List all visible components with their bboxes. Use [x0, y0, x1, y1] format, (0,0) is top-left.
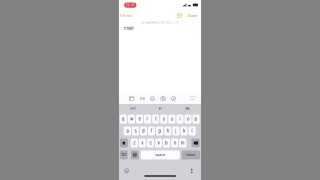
staticText: f — [151, 128, 153, 133]
staticText: r — [147, 117, 149, 122]
staticText: h — [167, 128, 169, 133]
button[interactable]: w — [128, 115, 135, 124]
button[interactable]: Emoji keyboard — [124, 168, 129, 173]
button[interactable]: z — [131, 138, 138, 147]
button[interactable]: Done — [186, 13, 199, 18]
button[interactable]: l — [188, 126, 196, 135]
button[interactable]: o — [184, 115, 191, 124]
staticText: are — [158, 107, 161, 110]
button[interactable]: Text format — [139, 96, 144, 101]
button[interactable]: e — [136, 115, 143, 124]
button[interactable]: Markup — [171, 96, 176, 101]
button[interactable]: q — [120, 115, 127, 124]
button[interactable]: k — [180, 126, 187, 135]
button[interactable]: y — [160, 115, 167, 124]
staticText: v — [157, 140, 159, 145]
button[interactable]: n — [171, 138, 178, 147]
button[interactable]: u — [168, 115, 175, 124]
staticText: j — [175, 128, 176, 133]
staticText: a — [126, 128, 128, 133]
staticText: Chair — [124, 26, 133, 31]
staticText: w — [130, 117, 133, 122]
staticText: g — [158, 128, 161, 133]
button[interactable]: 123 — [120, 150, 128, 159]
button[interactable]: space — [141, 150, 180, 159]
button[interactable]: r — [144, 115, 151, 124]
button[interactable]: More options — [177, 13, 182, 18]
staticText: o — [187, 117, 189, 122]
staticText: i — [179, 117, 180, 122]
button[interactable]: Dictation — [190, 168, 194, 173]
button[interactable]: p — [192, 115, 200, 124]
button[interactable]: Shift — [120, 138, 128, 147]
button[interactable]: Next keyboard — [131, 150, 139, 159]
staticText: with — [130, 107, 135, 110]
staticText: return — [186, 153, 195, 157]
staticText: m — [181, 140, 185, 145]
staticText: q — [122, 117, 125, 122]
button[interactable]: return — [182, 150, 200, 159]
button[interactable]: Camera — [161, 96, 166, 101]
button[interactable]: a — [124, 126, 131, 135]
button[interactable]: Notes — [120, 13, 134, 18]
button[interactable]: j — [172, 126, 179, 135]
button[interactable]: t — [152, 115, 159, 124]
button[interactable]: i — [176, 115, 183, 124]
button[interactable]: Delete — [191, 138, 200, 147]
staticText: 16 September 2021 at 22:33 — [141, 21, 179, 24]
staticText: p — [195, 117, 198, 122]
staticText: have — [185, 107, 189, 110]
staticText: y — [163, 117, 165, 122]
staticText: b — [165, 140, 168, 145]
staticText: Done — [188, 13, 197, 18]
staticText: 22:33 — [126, 3, 135, 7]
staticText: d — [142, 128, 145, 133]
button[interactable]: x — [139, 138, 146, 147]
button[interactable]: g — [156, 126, 163, 135]
staticText: c — [149, 140, 151, 145]
staticText: n — [174, 140, 176, 145]
staticText: space — [155, 153, 165, 157]
button[interactable]: Checklist — [150, 96, 155, 101]
button[interactable]: b — [163, 138, 170, 147]
button[interactable]: are — [146, 105, 174, 112]
staticText: Aa — [139, 96, 144, 101]
button[interactable]: d — [140, 126, 147, 135]
staticText: k — [183, 128, 185, 133]
button[interactable]: v — [155, 138, 162, 147]
staticText: u — [171, 117, 173, 122]
staticText: t — [155, 117, 156, 122]
button[interactable]: have — [174, 105, 201, 112]
button[interactable]: h — [164, 126, 171, 135]
button[interactable]: m — [179, 138, 186, 147]
button[interactable]: with — [119, 105, 146, 112]
button[interactable]: Hide keyboard — [190, 96, 195, 101]
staticText: e — [138, 117, 140, 122]
staticText: z — [133, 140, 135, 145]
staticText: x — [141, 140, 143, 145]
button[interactable]: s — [132, 126, 139, 135]
staticText: Notes — [123, 14, 133, 18]
button[interactable]: c — [147, 138, 154, 147]
staticText: 123 — [121, 153, 126, 157]
button[interactable]: Insert table — [129, 96, 134, 101]
staticText: s — [134, 128, 136, 133]
button[interactable]: f — [148, 126, 155, 135]
